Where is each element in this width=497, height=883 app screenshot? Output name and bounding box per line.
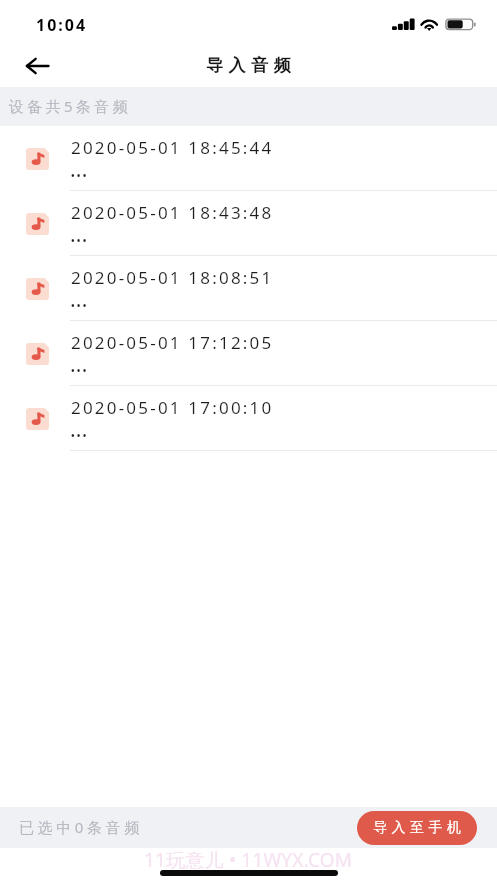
staticText: 已选中0条音频 [19,817,143,837]
staticText: 2020-05-01 18:43:48 [71,201,274,224]
staticText: 导入至手机 [371,819,463,837]
staticText: ... [70,285,88,314]
staticText: 2020-05-01 17:12:05 [71,331,274,354]
button[interactable]: 2020-05-01 17:00:10 [0,386,497,451]
staticText: ... [70,350,88,379]
staticText: 10:04 [36,14,88,36]
button[interactable]: 2020-05-01 18:08:51 [0,256,497,321]
staticText: 2020-05-01 18:45:44 [71,136,274,159]
button[interactable]: 2020-05-01 18:45:44 [0,126,497,191]
staticText: 2020-05-01 17:00:10 [71,396,274,419]
staticText: 2020-05-01 18:08:51 [71,266,274,289]
staticText: 设备共5条音频 [9,96,131,116]
staticText: ... [70,220,88,249]
staticText: ... [70,155,88,184]
button[interactable]: 导入至手机 [357,811,477,845]
staticText: ... [70,415,88,444]
button[interactable]: 2020-05-01 17:12:05 [0,321,497,386]
staticText: 导入音频 [206,55,297,76]
staticText: 11玩意儿 • 11WYX.COM [144,847,353,873]
button[interactable]: Back [16,45,58,87]
button[interactable]: 2020-05-01 18:43:48 [0,191,497,256]
